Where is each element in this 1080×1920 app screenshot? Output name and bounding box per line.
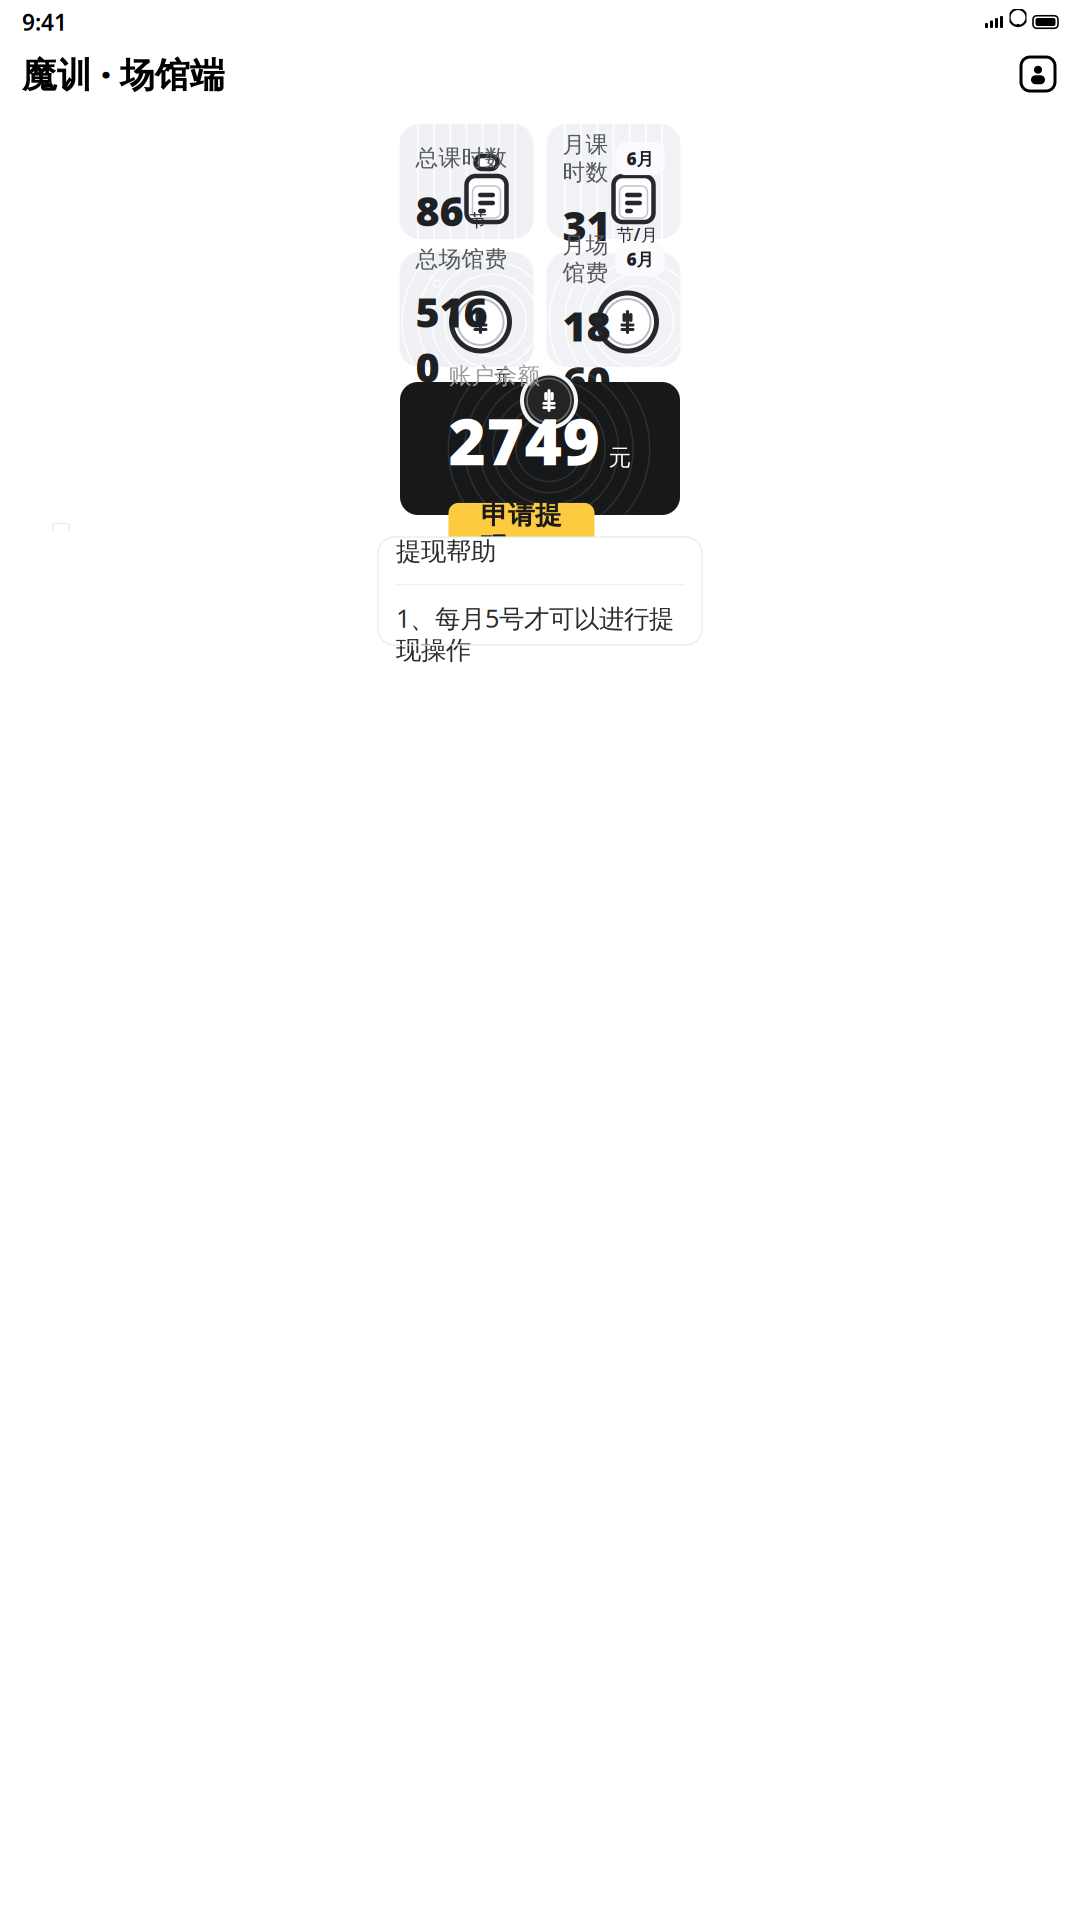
button[interactable]: 申请提现 <box>448 503 594 559</box>
staticText: 6月 <box>626 248 653 271</box>
button[interactable]: 账户中心 <box>1018 54 1058 94</box>
staticText: 86 <box>415 183 463 238</box>
staticText: 月场馆费 <box>562 231 608 287</box>
staticText: 总课时数 <box>415 144 507 172</box>
button[interactable]: 总课时数 <box>399 124 533 239</box>
button[interactable]: 月课时数 <box>546 124 680 239</box>
staticText: 提现帮助 <box>396 536 496 567</box>
staticText: 总场馆费 <box>415 245 507 273</box>
staticText: 元/月 <box>616 378 657 401</box>
staticText: 账户余额 <box>448 362 540 390</box>
staticText: 5160 <box>415 284 487 394</box>
staticText: 申请提现 <box>481 498 562 564</box>
staticText: 2749 <box>448 398 600 483</box>
staticText: 6月 <box>626 147 653 170</box>
staticText: 31 <box>562 197 610 252</box>
staticText: 元 <box>608 444 631 472</box>
staticText: 1860 <box>562 298 610 408</box>
staticText: 9:41 <box>22 7 67 37</box>
staticText: 节/月 <box>616 223 657 246</box>
button[interactable]: 月场馆费 <box>546 252 680 367</box>
staticText: 魔训 · 场馆端 <box>22 51 225 97</box>
staticText: 月课时数 <box>562 131 608 186</box>
staticText: 元 <box>493 366 510 387</box>
staticText: 节 <box>469 210 486 231</box>
button[interactable]: 总场馆费 <box>399 252 533 367</box>
staticText: 1、每月5号才可以进行提现操作 <box>396 601 674 666</box>
